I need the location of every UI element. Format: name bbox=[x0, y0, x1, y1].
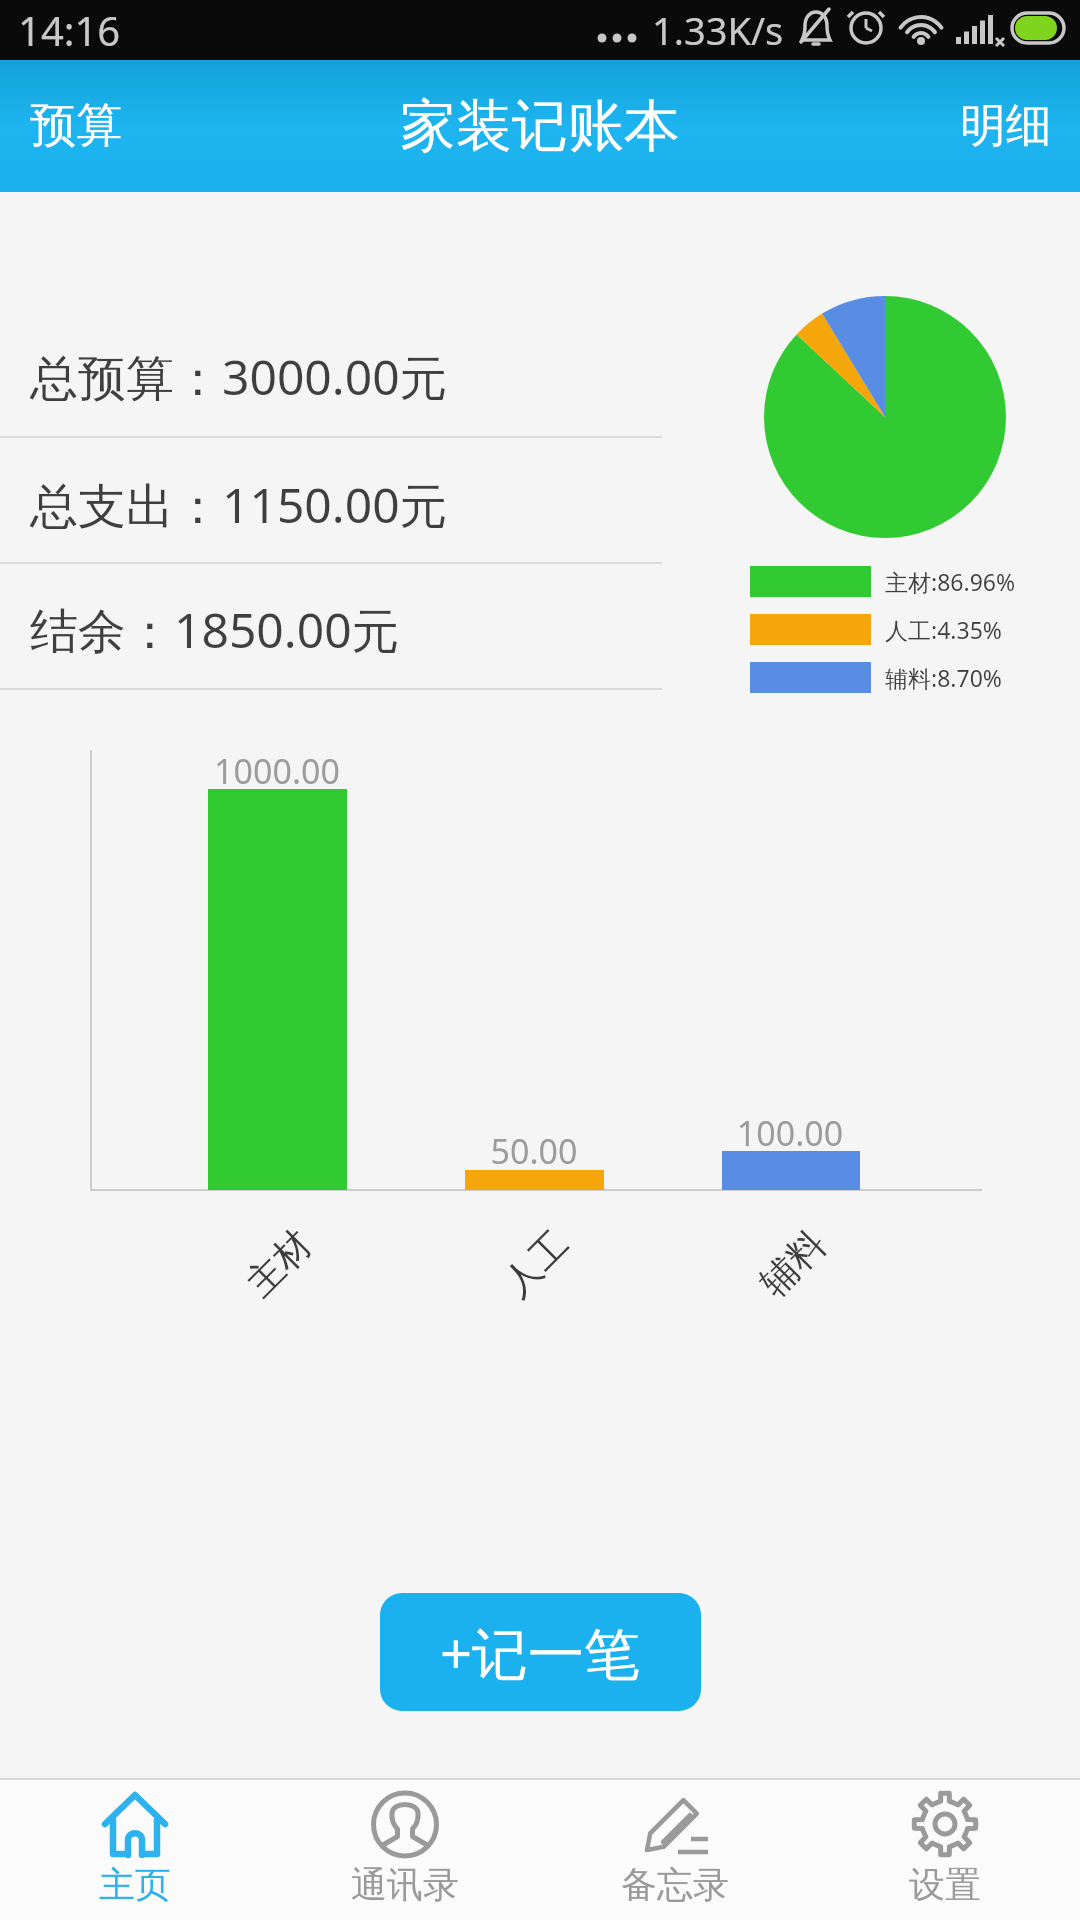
staticText: 人工:4.35% bbox=[885, 614, 1002, 645]
staticText: 14:16 bbox=[18, 3, 121, 57]
button[interactable]: 主页 bbox=[0, 1778, 270, 1920]
staticText: 主页 bbox=[99, 1862, 171, 1907]
staticText: 家装记账本 bbox=[400, 91, 680, 162]
staticText: 辅料 bbox=[750, 1221, 836, 1306]
staticText: 50.00 bbox=[464, 1128, 604, 1174]
staticText: 设置 bbox=[909, 1862, 981, 1907]
staticText: 预算 bbox=[30, 97, 122, 155]
staticText: 总预算：3000.00元 bbox=[30, 344, 448, 410]
staticText: 辅料:8.70% bbox=[885, 662, 1002, 693]
staticText: 1000.00 bbox=[207, 748, 347, 794]
button[interactable]: 预算 bbox=[30, 97, 122, 155]
button[interactable]: 通讯录 bbox=[270, 1778, 540, 1920]
staticText: 1.33K/s bbox=[652, 4, 784, 56]
staticText: 人工 bbox=[493, 1221, 579, 1306]
staticText: 结余：1850.00元 bbox=[30, 597, 400, 663]
button[interactable]: 备忘录 bbox=[540, 1778, 810, 1920]
staticText: 备忘录 bbox=[621, 1862, 729, 1907]
staticText: 主材 bbox=[236, 1221, 322, 1306]
staticText: 100.00 bbox=[720, 1110, 860, 1156]
button[interactable]: +记一笔 bbox=[380, 1593, 701, 1711]
staticText: +记一笔 bbox=[440, 1614, 641, 1690]
button[interactable]: 明细 bbox=[960, 97, 1052, 155]
staticText: 通讯录 bbox=[351, 1862, 459, 1907]
staticText: 主材:86.96% bbox=[885, 566, 1016, 597]
staticText: 明细 bbox=[960, 97, 1052, 155]
button[interactable]: 设置 bbox=[810, 1778, 1080, 1920]
staticText: 总支出：1150.00元 bbox=[30, 472, 448, 538]
